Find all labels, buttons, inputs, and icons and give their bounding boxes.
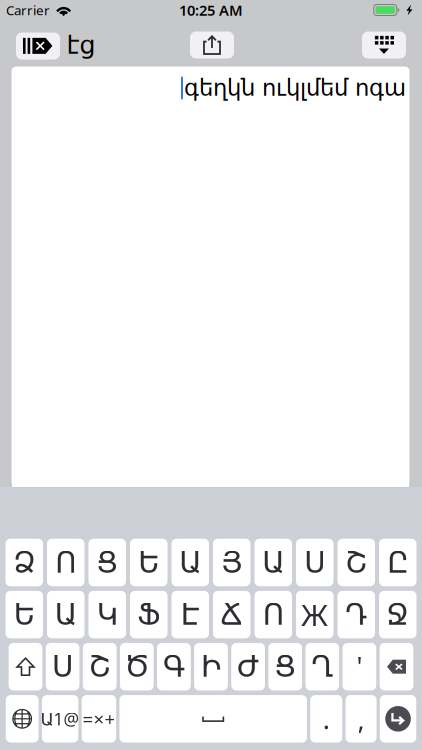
button[interactable]: Շ xyxy=(83,643,117,690)
staticText: Շ xyxy=(345,546,367,579)
staticText: Ա xyxy=(55,598,77,631)
staticText: Կ xyxy=(97,598,118,631)
staticText: Carrier xyxy=(6,1,50,19)
button[interactable]: Next keyboard xyxy=(6,695,39,742)
button[interactable]: Դ xyxy=(337,591,375,638)
button[interactable]: Ս xyxy=(46,643,79,690)
button[interactable]: Ե xyxy=(5,591,43,638)
button[interactable]: Ա xyxy=(47,591,84,638)
button[interactable]: Կ xyxy=(88,591,126,638)
staticText: Ա xyxy=(262,546,284,579)
staticText: Ե xyxy=(14,598,35,631)
button[interactable]: Ց xyxy=(88,539,126,586)
staticText: Ի xyxy=(201,650,221,683)
staticText: Ո xyxy=(263,598,284,631)
button[interactable]: Clear text xyxy=(16,32,60,59)
staticText: Դ xyxy=(345,598,367,631)
button[interactable]: Space xyxy=(119,695,307,742)
staticText: , xyxy=(358,701,365,736)
staticText: Ժ xyxy=(237,650,259,683)
staticText: Ա1@ xyxy=(41,707,80,730)
staticText: Է xyxy=(181,598,200,631)
staticText: Ց xyxy=(274,650,296,683)
staticText: Ջ xyxy=(386,598,409,631)
button[interactable]: . xyxy=(310,695,342,742)
button[interactable]: Ս xyxy=(296,539,333,586)
button[interactable]: Delete xyxy=(380,643,413,690)
staticText: Ը xyxy=(387,546,408,579)
button[interactable]: Ձ xyxy=(5,539,43,586)
button[interactable]: Ո xyxy=(47,539,84,586)
staticText: =×+ xyxy=(82,706,115,731)
staticText: Ծ xyxy=(124,650,149,683)
staticText: Գ xyxy=(163,650,185,683)
staticText: Ց xyxy=(96,546,118,579)
staticText: Ո xyxy=(55,546,76,579)
button[interactable]: Hide keyboard xyxy=(362,31,406,58)
staticText: Ա xyxy=(179,546,201,579)
button[interactable]: Ծ xyxy=(120,643,154,690)
staticText: Յ xyxy=(221,546,242,579)
button[interactable]: ' xyxy=(343,643,376,690)
staticText: . xyxy=(323,701,330,736)
button[interactable]: Share xyxy=(190,31,234,58)
button[interactable]: Ж xyxy=(296,591,333,638)
button[interactable]: Shift xyxy=(9,643,42,690)
button[interactable]: , xyxy=(346,695,377,742)
staticText: Ֆ xyxy=(137,598,160,631)
button[interactable]: Return xyxy=(380,695,416,742)
button[interactable]: Ա xyxy=(254,539,292,586)
button[interactable]: Ի xyxy=(194,643,228,690)
button[interactable]: Ե xyxy=(130,539,167,586)
button[interactable]: Ց xyxy=(268,643,302,690)
button[interactable]: Շ xyxy=(337,539,375,586)
staticText: Ղ xyxy=(311,650,333,683)
staticText: ' xyxy=(356,649,362,684)
button[interactable]: Ջ xyxy=(379,591,416,638)
staticText: Ж xyxy=(301,595,328,634)
staticText: գեղկն ուկլմեմ ոգա xyxy=(184,75,406,101)
button[interactable]: Է xyxy=(171,591,209,638)
staticText: Ս xyxy=(52,650,73,683)
staticText: Ձ xyxy=(13,546,35,579)
button[interactable]: Ա1@ xyxy=(42,695,78,742)
staticText: Ճ xyxy=(220,598,243,631)
button[interactable]: Ճ xyxy=(213,591,250,638)
staticText: Շ xyxy=(89,650,111,683)
button[interactable]: =×+ xyxy=(82,695,116,742)
button[interactable]: Ա xyxy=(171,539,209,586)
staticText: 10:25 AM xyxy=(179,0,243,20)
button[interactable]: Ժ xyxy=(231,643,265,690)
button[interactable]: Ո xyxy=(254,591,292,638)
button[interactable]: Գ xyxy=(157,643,191,690)
staticText: Ե xyxy=(138,546,159,579)
staticText: Ս xyxy=(304,546,325,579)
button[interactable]: Ղ xyxy=(305,643,339,690)
button[interactable]: Ը xyxy=(379,539,416,586)
button[interactable]: Ֆ xyxy=(130,591,167,638)
button[interactable]: Յ xyxy=(213,539,250,586)
staticText: էց xyxy=(66,31,95,59)
